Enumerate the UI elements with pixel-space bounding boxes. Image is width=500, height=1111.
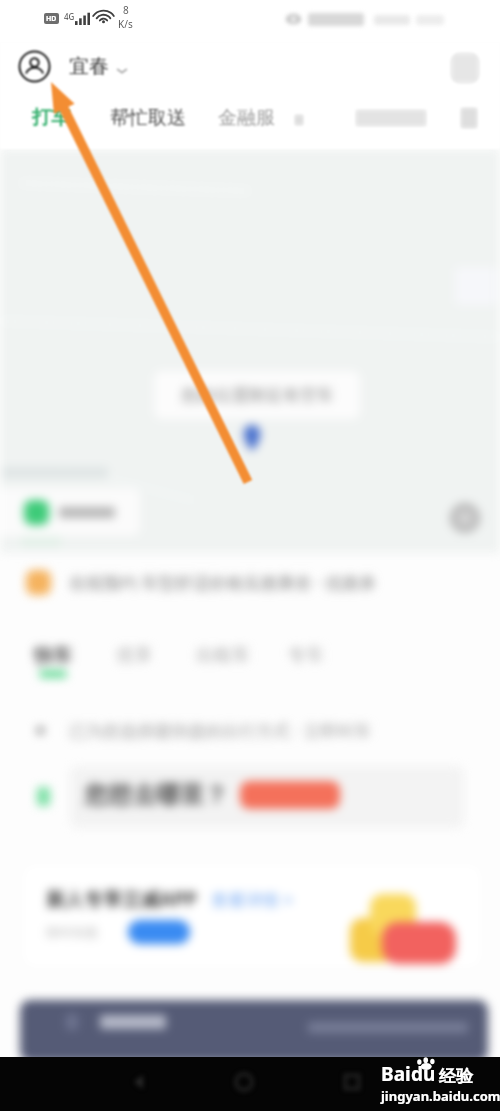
button[interactable]: Menu bbox=[450, 52, 480, 84]
staticText: 出租车 bbox=[196, 644, 250, 667]
button[interactable]: 已为您选择最快捷的出行方式 · 立即叫车 bbox=[0, 710, 500, 750]
other: Profile bbox=[16, 48, 53, 85]
staticText: jingyan.baidu.com bbox=[381, 1087, 500, 1105]
staticText: 您想去哪里？ bbox=[84, 780, 228, 810]
staticText: 快车 bbox=[34, 644, 72, 668]
staticText: 新人专享立减APP bbox=[46, 886, 197, 912]
staticText: 查看详情 > bbox=[211, 888, 294, 911]
button[interactable]: Profile bbox=[16, 48, 128, 85]
button[interactable]: 优享 bbox=[116, 644, 152, 667]
staticText: 限时特惠 bbox=[46, 924, 98, 940]
button[interactable]: 金融服 bbox=[218, 106, 275, 130]
staticText: 帮忙取送 bbox=[110, 106, 186, 130]
staticText: HD bbox=[46, 14, 57, 24]
button[interactable]: Back bbox=[117, 1060, 161, 1104]
button[interactable]: 打车 bbox=[32, 106, 70, 130]
button[interactable] bbox=[0, 488, 140, 536]
staticText: 宜春 bbox=[69, 54, 109, 79]
button[interactable]: 快车 bbox=[34, 644, 72, 678]
button[interactable]: 帮忙取送 bbox=[110, 106, 186, 130]
staticText: 优享 bbox=[116, 644, 152, 667]
staticText: 4G bbox=[64, 11, 75, 22]
staticText: 在线预约 车型舒适价格实惠乘坐 · 优惠券 bbox=[69, 571, 376, 594]
button[interactable]: 在线预约 车型舒适价格实惠乘坐 · 优惠券 bbox=[0, 558, 500, 606]
button[interactable] bbox=[70, 766, 464, 828]
button[interactable]: Recents bbox=[330, 1060, 374, 1104]
staticText: 金融服 bbox=[218, 106, 275, 130]
staticText: 已为您选择最快捷的出行方式 · 立即叫车 bbox=[69, 719, 372, 742]
button[interactable]: 专车 bbox=[288, 644, 324, 667]
staticText: K/s bbox=[118, 17, 133, 31]
staticText: 您的位置附近有空车 bbox=[181, 385, 334, 406]
button[interactable]: 新人专享立减APP bbox=[24, 866, 480, 966]
staticText: 8 bbox=[123, 3, 129, 17]
staticText: Bai bbox=[381, 1061, 411, 1087]
staticText: 经验 bbox=[439, 1066, 473, 1087]
staticText: du bbox=[411, 1061, 436, 1087]
staticText: 打车 bbox=[32, 106, 70, 130]
button[interactable]: Home bbox=[222, 1060, 266, 1104]
button[interactable] bbox=[20, 1000, 488, 1062]
button[interactable]: 出租车 bbox=[196, 644, 250, 667]
staticText: 专车 bbox=[288, 644, 324, 667]
